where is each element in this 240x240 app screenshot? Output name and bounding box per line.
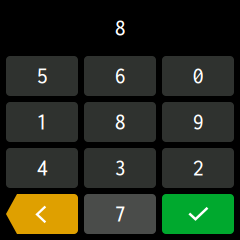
button[interactable]: 9 xyxy=(162,102,234,142)
button[interactable]: 0 xyxy=(162,56,234,96)
staticText: 6 xyxy=(114,64,125,88)
button[interactable]: 5 xyxy=(6,56,78,96)
staticText: 1 xyxy=(36,110,47,134)
staticText: 9 xyxy=(192,110,203,134)
button[interactable]: 3 xyxy=(84,148,156,188)
button[interactable]: 1 xyxy=(6,102,78,142)
staticText: 8 xyxy=(114,16,125,40)
button[interactable]: Delete xyxy=(6,194,78,234)
button[interactable]: 4 xyxy=(6,148,78,188)
staticText: 3 xyxy=(114,156,125,180)
button[interactable]: Confirm xyxy=(162,194,234,234)
button[interactable]: 8 xyxy=(84,102,156,142)
staticText: 4 xyxy=(36,156,47,180)
button[interactable]: 7 xyxy=(84,194,156,234)
staticText: 7 xyxy=(114,202,125,226)
staticText: 0 xyxy=(192,64,203,88)
button[interactable]: 2 xyxy=(162,148,234,188)
staticText: 2 xyxy=(192,156,203,180)
button[interactable]: 6 xyxy=(84,56,156,96)
staticText: 8 xyxy=(114,110,125,134)
staticText: 5 xyxy=(36,64,47,88)
